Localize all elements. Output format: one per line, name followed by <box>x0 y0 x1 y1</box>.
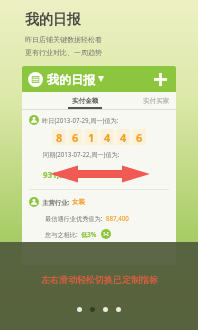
staticText: 低3% <box>81 230 97 238</box>
staticText: 我的日报 <box>47 72 95 87</box>
button[interactable]: Add report <box>150 69 170 89</box>
button[interactable]: Page 3 <box>103 307 108 312</box>
staticText: 女装 <box>72 198 85 206</box>
staticText: 1 <box>88 130 95 145</box>
staticText: 同期(2013-07-22,周一)值为: <box>43 150 120 158</box>
staticText: 昨日店铺关键数据轻松看 <box>25 35 102 44</box>
staticText: 931,8 <box>43 169 64 180</box>
staticText: 左右滑动轻松切换已定制指标 <box>41 274 158 285</box>
staticText: 887,400 <box>106 214 129 222</box>
staticText: 6 <box>72 130 79 145</box>
staticText: 主营行业: <box>42 198 70 207</box>
staticText: 您与之相比: <box>45 230 78 238</box>
staticText: 实付金额 <box>72 97 99 105</box>
staticText: 4 <box>104 130 111 145</box>
button[interactable]: Page 1 <box>77 307 82 312</box>
button[interactable]: 实付金额 <box>68 97 102 109</box>
staticText: 昨日(2013-07-29,周一)值为: <box>42 116 119 124</box>
staticText: ↓0% <box>94 170 109 179</box>
button[interactable]: Page 2 <box>90 307 95 312</box>
staticText: 更有行业对比、一周趋势 <box>25 48 102 57</box>
staticText: 我的日报 <box>25 11 81 29</box>
button[interactable]: 我的日报 <box>22 66 176 92</box>
staticText: 最信通行业优秀值为: <box>45 214 103 222</box>
staticText: 4 <box>120 130 127 145</box>
button[interactable]: Page 4 <box>116 307 121 312</box>
staticText: 8 <box>56 130 63 145</box>
button[interactable]: 实付买家 <box>143 97 170 109</box>
staticText: 实付买家 <box>143 97 170 105</box>
staticText: 同比: <box>76 170 91 179</box>
staticText: 6 <box>136 130 143 145</box>
